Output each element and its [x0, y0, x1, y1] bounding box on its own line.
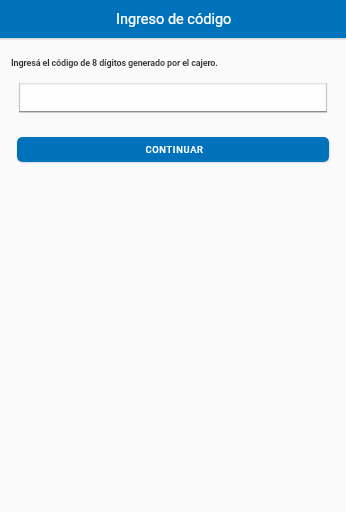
staticText: Ingreso de código [116, 11, 232, 28]
staticText: CONTINUAR [145, 144, 204, 155]
staticText: Ingresá el código de 8 dígitos generado … [11, 58, 218, 69]
button[interactable]: CONTINUAR [17, 137, 329, 162]
button[interactable]: Campo de código de 8 dígitos [19, 83, 327, 113]
